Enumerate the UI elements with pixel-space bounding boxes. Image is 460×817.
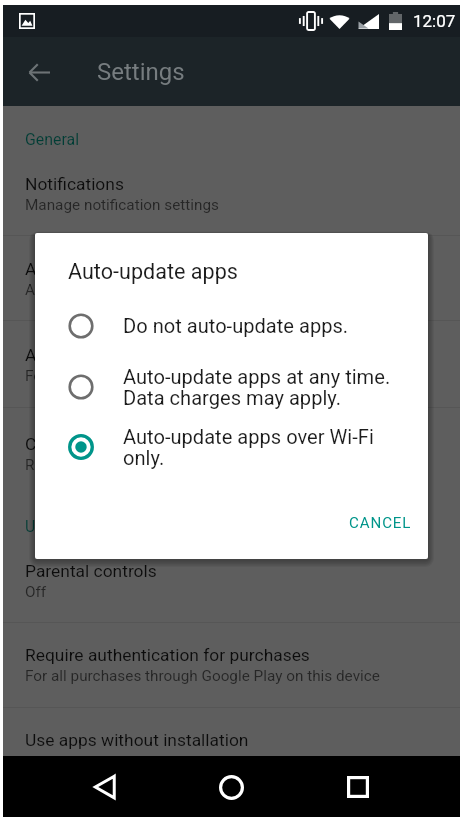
staticText: Clear local search history <box>25 434 220 454</box>
staticText: For any network <box>25 367 134 385</box>
staticText: User controls <box>25 517 119 536</box>
staticText: Settings <box>97 58 185 86</box>
staticText: 12:07 <box>413 11 456 31</box>
staticText: Auto-update apps at any time. Data charg… <box>123 365 391 410</box>
button[interactable]: Auto-update apps at any time. Data charg… <box>35 362 428 412</box>
button[interactable]: Clear local search history <box>3 408 460 498</box>
button[interactable]: Require authentication for purchases <box>3 623 460 707</box>
button[interactable]: App download preference <box>3 321 460 407</box>
button[interactable]: Notifications <box>3 155 460 235</box>
staticText: Auto-update apps <box>68 259 238 284</box>
staticText: App download preference <box>25 345 223 365</box>
staticText: Auto-update apps <box>25 259 162 279</box>
button[interactable]: Auto-update apps <box>3 236 460 320</box>
button[interactable]: Use apps without installation <box>3 708 460 759</box>
staticText: For all purchases through Google Play on… <box>25 667 380 685</box>
button[interactable]: Do not auto-update apps. <box>35 301 428 351</box>
staticText: Use apps without installation <box>25 730 249 750</box>
staticText: Remove the searches you have done <box>25 456 273 474</box>
staticText: Require authentication for purchases <box>25 645 310 665</box>
staticText: Auto-update apps over Wi-Fi only <box>25 281 248 299</box>
staticText: Auto-update apps over Wi-Fi only. <box>123 425 374 470</box>
staticText: Off <box>25 583 47 601</box>
button[interactable]: Navigate up <box>15 48 63 96</box>
button[interactable]: Recent apps <box>334 763 382 811</box>
staticText: General <box>25 130 80 149</box>
button[interactable]: CANCEL <box>341 507 420 539</box>
staticText: Do not auto-update apps. <box>123 314 349 338</box>
staticText: Parental controls <box>25 561 157 581</box>
staticText: Notifications <box>25 174 124 194</box>
staticText: CANCEL <box>349 514 412 532</box>
button[interactable]: Home <box>207 763 255 811</box>
button[interactable]: Auto-update apps over Wi-Fi only. <box>35 422 428 472</box>
button[interactable]: Parental controls <box>3 542 460 622</box>
button[interactable]: Back <box>81 763 129 811</box>
staticText: Manage notification settings <box>25 196 219 214</box>
